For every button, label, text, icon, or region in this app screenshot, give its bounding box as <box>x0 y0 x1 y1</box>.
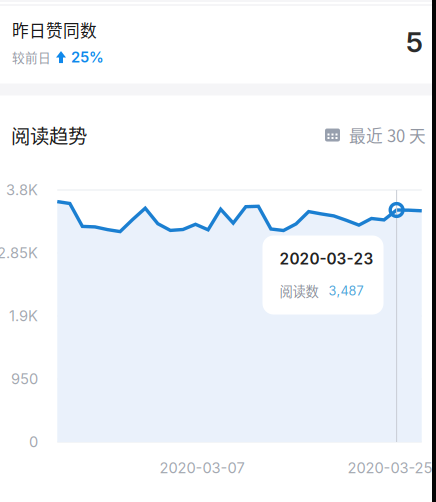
staticText: 3,487 <box>328 283 363 298</box>
staticText: 2020-03-25 <box>347 459 432 477</box>
staticText: 25% <box>71 48 104 66</box>
staticText: 3.8K <box>6 181 38 199</box>
staticText: 昨日赞同数 <box>12 18 97 42</box>
staticText: 最近 30 天 <box>349 123 426 147</box>
staticText: 较前日 <box>12 48 51 66</box>
staticText: 2020-03-07 <box>159 459 244 477</box>
staticText: 阅读数 <box>279 281 318 300</box>
button[interactable]: 最近 30 天 <box>325 123 426 147</box>
staticText: 2.85K <box>0 244 38 262</box>
staticText: 2020-03-23 <box>279 250 373 268</box>
staticText: 5 <box>406 25 423 59</box>
staticText: 阅读趋势 <box>11 121 87 149</box>
staticText: 950 <box>11 370 38 388</box>
staticText: 0 <box>29 433 38 451</box>
staticText: 1.9K <box>9 307 38 325</box>
